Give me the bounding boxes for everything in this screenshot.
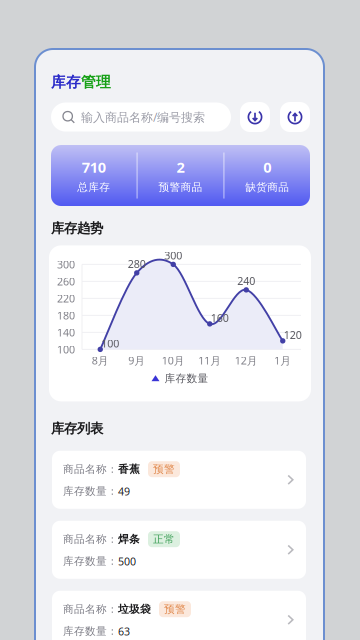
staticText: 总库存: [77, 181, 110, 194]
staticText: 库存列表: [51, 420, 103, 437]
staticText: 63: [118, 624, 130, 638]
staticText: 240: [237, 274, 255, 288]
staticText: 49: [118, 484, 130, 498]
staticText: 1月: [274, 353, 291, 367]
staticText: 商品名称：: [63, 463, 118, 476]
staticText: 正常: [153, 533, 175, 546]
staticText: 220: [57, 291, 75, 305]
staticText: 商品名称：: [63, 603, 118, 616]
staticText: 垃圾袋: [118, 603, 151, 616]
button[interactable]: 导出: [280, 102, 310, 132]
staticText: 160: [211, 311, 229, 325]
button[interactable]: 商品名称：: [52, 521, 306, 579]
staticText: 预警: [164, 603, 186, 616]
staticText: 库存: [51, 73, 81, 91]
staticText: 9月: [128, 353, 145, 367]
staticText: 预警: [153, 463, 175, 476]
staticText: 500: [118, 554, 136, 568]
staticText: 300: [164, 248, 182, 262]
button[interactable]: 商品名称：: [52, 451, 306, 509]
staticText: 库存数量：: [63, 485, 118, 498]
staticText: 库存数量：: [63, 625, 118, 638]
staticText: 140: [57, 325, 75, 339]
staticText: 库存趋势: [51, 220, 103, 236]
staticText: 180: [57, 308, 75, 322]
staticText: 库存数量：: [63, 555, 118, 568]
staticText: 2: [176, 157, 184, 177]
staticText: 300: [57, 257, 75, 271]
staticText: 280: [128, 257, 146, 271]
staticText: 0: [263, 157, 271, 177]
staticText: 焊条: [118, 533, 140, 546]
staticText: 管理: [81, 73, 111, 91]
staticText: 输入商品名称/编号搜索: [81, 109, 205, 125]
staticText: 缺货商品: [245, 181, 289, 194]
staticText: 710: [82, 157, 106, 177]
button[interactable]: 商品名称：: [52, 591, 306, 640]
staticText: 120: [284, 328, 302, 342]
button[interactable]: 导入: [240, 102, 270, 132]
staticText: 12月: [235, 353, 258, 367]
staticText: 10月: [162, 353, 185, 367]
staticText: 11月: [198, 353, 221, 367]
staticText: 库存数量: [164, 372, 208, 385]
staticText: 香蕉: [118, 463, 140, 476]
staticText: 100: [57, 342, 75, 356]
staticText: 8月: [92, 353, 109, 367]
staticText: 100: [101, 336, 119, 350]
staticText: 预警商品: [158, 181, 202, 194]
staticText: 商品名称：: [63, 533, 118, 546]
staticText: 260: [57, 274, 75, 288]
